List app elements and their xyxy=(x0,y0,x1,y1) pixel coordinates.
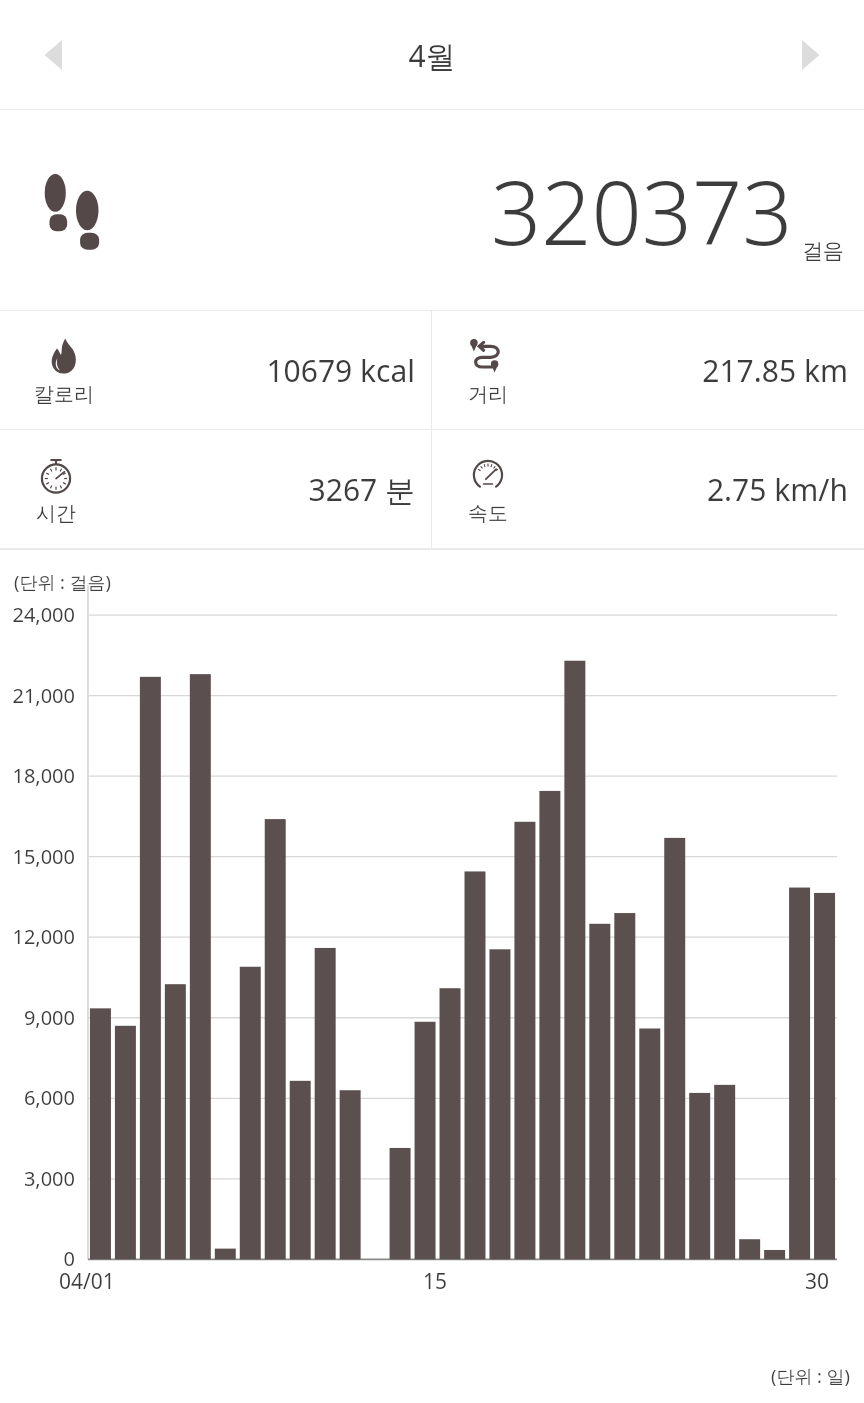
staticText: (단위 : 걸음) xyxy=(14,570,111,595)
button[interactable]: 시간 xyxy=(0,430,431,548)
staticText: 18,000 xyxy=(12,762,75,789)
staticText: 320373 xyxy=(491,151,793,271)
staticText: 24,000 xyxy=(12,601,75,628)
staticText: 30 xyxy=(805,1267,830,1296)
staticText: 걸음 xyxy=(802,238,844,264)
staticText: 0 xyxy=(63,1245,75,1272)
staticText: 3,000 xyxy=(23,1165,75,1192)
staticText: 2.75 km/h xyxy=(706,469,848,510)
button[interactable]: Previous month xyxy=(14,13,98,97)
button[interactable]: 속도 xyxy=(432,430,864,548)
staticText: 217.85 km xyxy=(702,350,848,391)
button[interactable]: 거리 xyxy=(432,311,864,429)
staticText: 3267 분 xyxy=(308,469,415,510)
staticText: 속도 xyxy=(468,501,508,526)
button[interactable]: Next month xyxy=(766,13,850,97)
staticText: 시간 xyxy=(36,501,76,526)
staticText: 15 xyxy=(423,1267,448,1296)
staticText: 6,000 xyxy=(23,1084,75,1111)
staticText: 4월 xyxy=(408,35,456,76)
staticText: 거리 xyxy=(468,382,508,407)
staticText: 9,000 xyxy=(23,1004,75,1031)
staticText: 칼로리 xyxy=(34,382,94,407)
staticText: 10679 kcal xyxy=(266,350,415,391)
staticText: 21,000 xyxy=(12,682,75,709)
staticText: (단위 : 일) xyxy=(771,1364,850,1389)
staticText: 12,000 xyxy=(12,923,75,950)
staticText: 15,000 xyxy=(12,843,75,870)
staticText: 04/01 xyxy=(59,1267,115,1296)
button[interactable]: 320373 xyxy=(0,110,864,311)
button[interactable]: 칼로리 xyxy=(0,311,431,429)
